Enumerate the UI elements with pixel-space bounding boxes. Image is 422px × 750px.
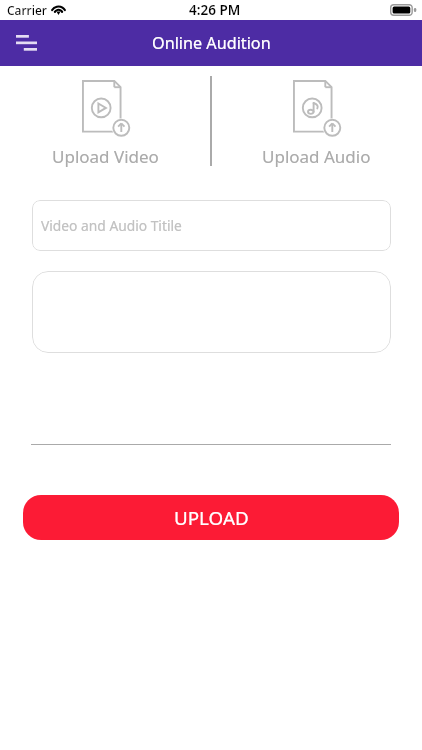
staticText: 4:26 PM xyxy=(189,1,241,19)
button[interactable] xyxy=(32,271,391,353)
staticText: Online Audition xyxy=(152,32,271,54)
button[interactable]: Upload Video xyxy=(52,76,159,168)
staticText: Upload Video xyxy=(52,145,159,168)
button[interactable]: UPLOAD xyxy=(23,495,399,540)
button[interactable]: Upload Audio xyxy=(262,76,371,168)
staticText: Carrier xyxy=(7,2,47,18)
button[interactable]: Menu xyxy=(4,21,48,65)
staticText: UPLOAD xyxy=(174,505,249,531)
staticText: Upload Audio xyxy=(262,145,371,168)
staticText: Video and Audio Titile xyxy=(41,216,182,235)
button[interactable]: Video and Audio Titile xyxy=(32,200,391,251)
